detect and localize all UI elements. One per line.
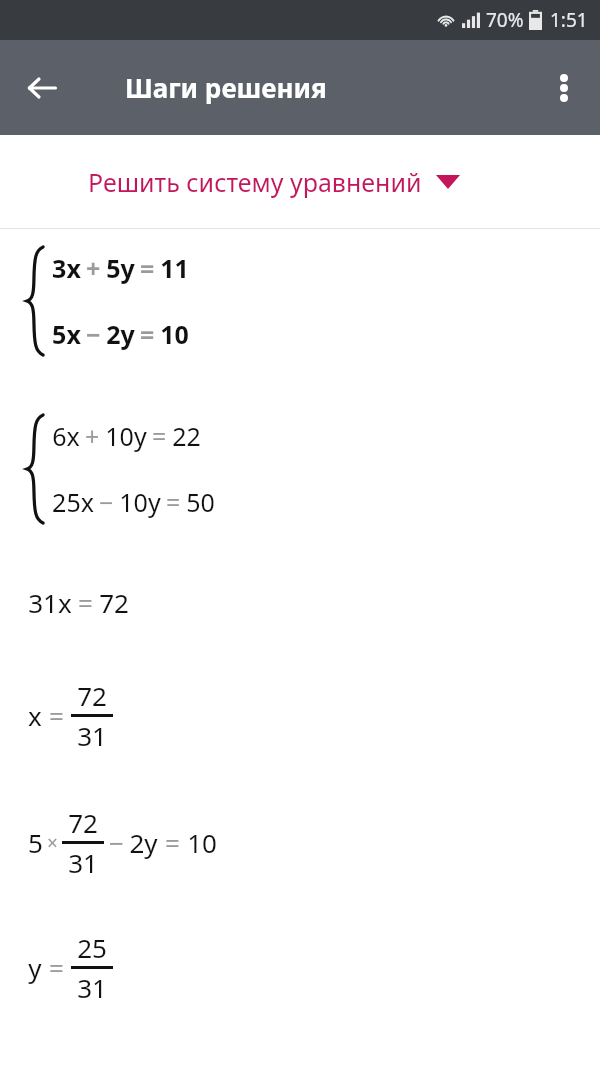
staticText: ×	[47, 830, 58, 856]
staticText: −	[109, 825, 124, 860]
staticText: Шаги решения	[125, 70, 327, 105]
staticText: 2y	[106, 317, 135, 351]
staticText: 31x	[28, 585, 72, 620]
button[interactable]: Решить систему уравнений	[0, 135, 600, 228]
staticText: 31	[68, 845, 98, 880]
staticText: 31	[77, 718, 107, 753]
staticText: 6x	[52, 419, 80, 453]
staticText: 22	[172, 419, 201, 453]
staticText: x	[28, 698, 42, 733]
staticText: 31	[77, 970, 107, 1005]
staticText: 72	[99, 585, 129, 620]
staticText: =	[49, 950, 64, 985]
staticText: 5y	[106, 251, 135, 285]
staticText: 25	[77, 930, 107, 965]
staticText: 11	[160, 251, 189, 285]
staticText: =	[140, 251, 155, 285]
staticText: =	[49, 698, 64, 733]
staticText: 10y	[105, 419, 147, 453]
staticText: +	[86, 251, 101, 285]
staticText: 3x	[52, 251, 81, 285]
staticText: 10y	[119, 485, 161, 519]
staticText: 50	[186, 485, 215, 519]
staticText: =	[78, 585, 93, 620]
staticText: 70%	[486, 7, 524, 33]
staticText: 72	[68, 805, 98, 840]
staticText: 25x	[52, 485, 94, 519]
staticText: 10	[160, 317, 189, 351]
staticText: =	[152, 419, 167, 453]
staticText: =	[140, 317, 155, 351]
staticText: +	[85, 419, 100, 453]
button[interactable]: Back	[14, 60, 70, 116]
staticText: =	[166, 485, 181, 519]
staticText: 5	[28, 825, 43, 860]
staticText: 5x	[52, 317, 81, 351]
button[interactable]: More options	[536, 60, 592, 116]
staticText: 2y	[129, 825, 158, 860]
staticText: 10	[187, 825, 217, 860]
staticText: =	[165, 825, 180, 860]
staticText: 72	[77, 678, 107, 713]
staticText: −	[99, 485, 114, 519]
staticText: 1:51	[550, 7, 588, 33]
staticText: y	[28, 950, 42, 985]
staticText: −	[86, 317, 101, 351]
staticText: Решить систему уравнений	[88, 165, 422, 199]
